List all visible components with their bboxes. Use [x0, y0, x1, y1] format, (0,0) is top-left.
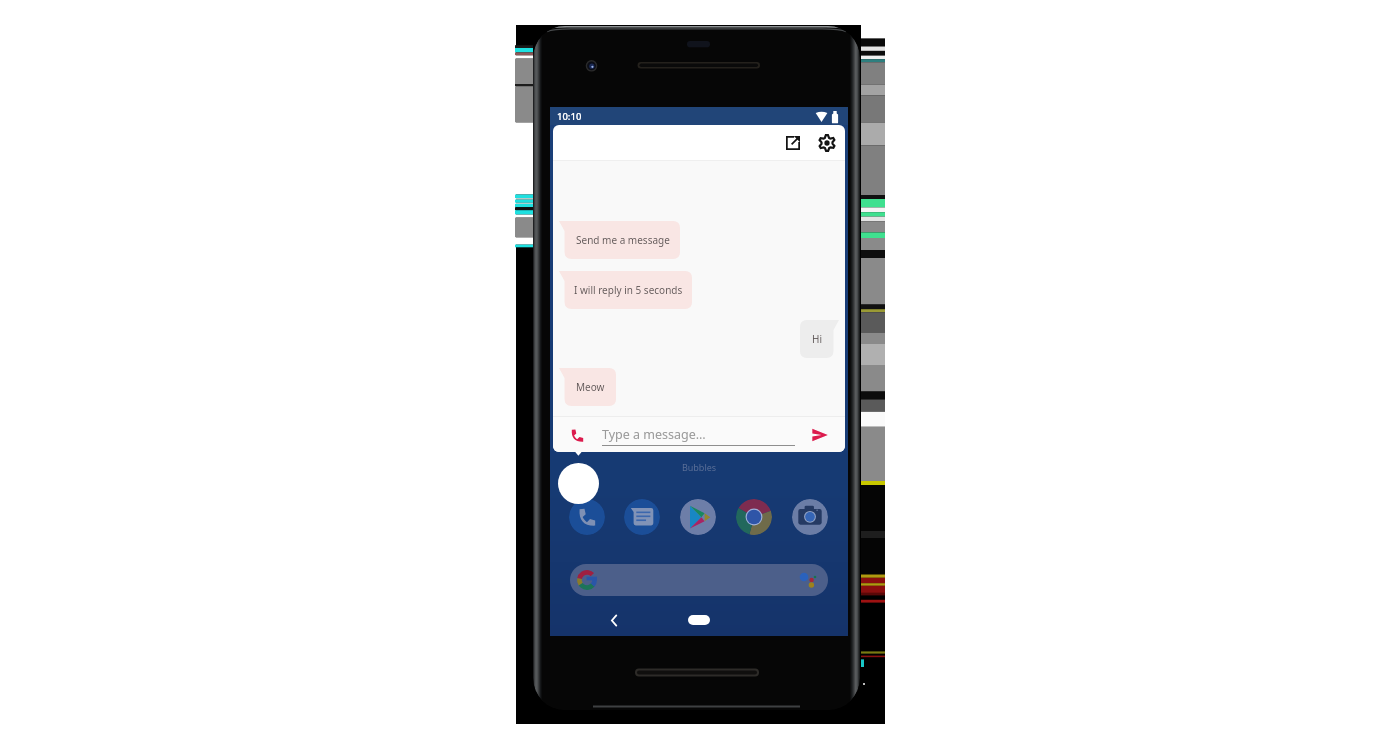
button[interactable]: Meow — [559, 368, 616, 406]
staticText: Meow — [576, 380, 605, 394]
button[interactable] — [624, 499, 660, 535]
staticText: Send me a message — [576, 233, 670, 247]
button[interactable]: Back — [605, 611, 623, 629]
staticText: 10:10 — [557, 110, 582, 123]
button[interactable]: Send — [809, 424, 831, 446]
button[interactable]: Open in new window — [781, 131, 805, 155]
button[interactable] — [736, 499, 772, 535]
staticText: Bubbles — [550, 461, 848, 473]
button[interactable]: Search — [570, 564, 828, 596]
button[interactable] — [569, 499, 605, 535]
button[interactable]: Settings — [815, 131, 839, 155]
button[interactable]: Hi — [800, 320, 839, 358]
staticText: Type a message… — [602, 426, 706, 443]
button[interactable] — [792, 499, 828, 535]
staticText: I will reply in 5 seconds — [574, 283, 683, 297]
button[interactable]: Send me a message — [559, 221, 680, 259]
staticText: Hi — [812, 332, 822, 346]
button[interactable]: Home — [688, 615, 710, 625]
button[interactable]: Call — [566, 424, 588, 446]
button[interactable]: I will reply in 5 seconds — [559, 271, 692, 309]
button[interactable] — [680, 499, 716, 535]
button[interactable]: Chat bubble — [558, 463, 599, 504]
